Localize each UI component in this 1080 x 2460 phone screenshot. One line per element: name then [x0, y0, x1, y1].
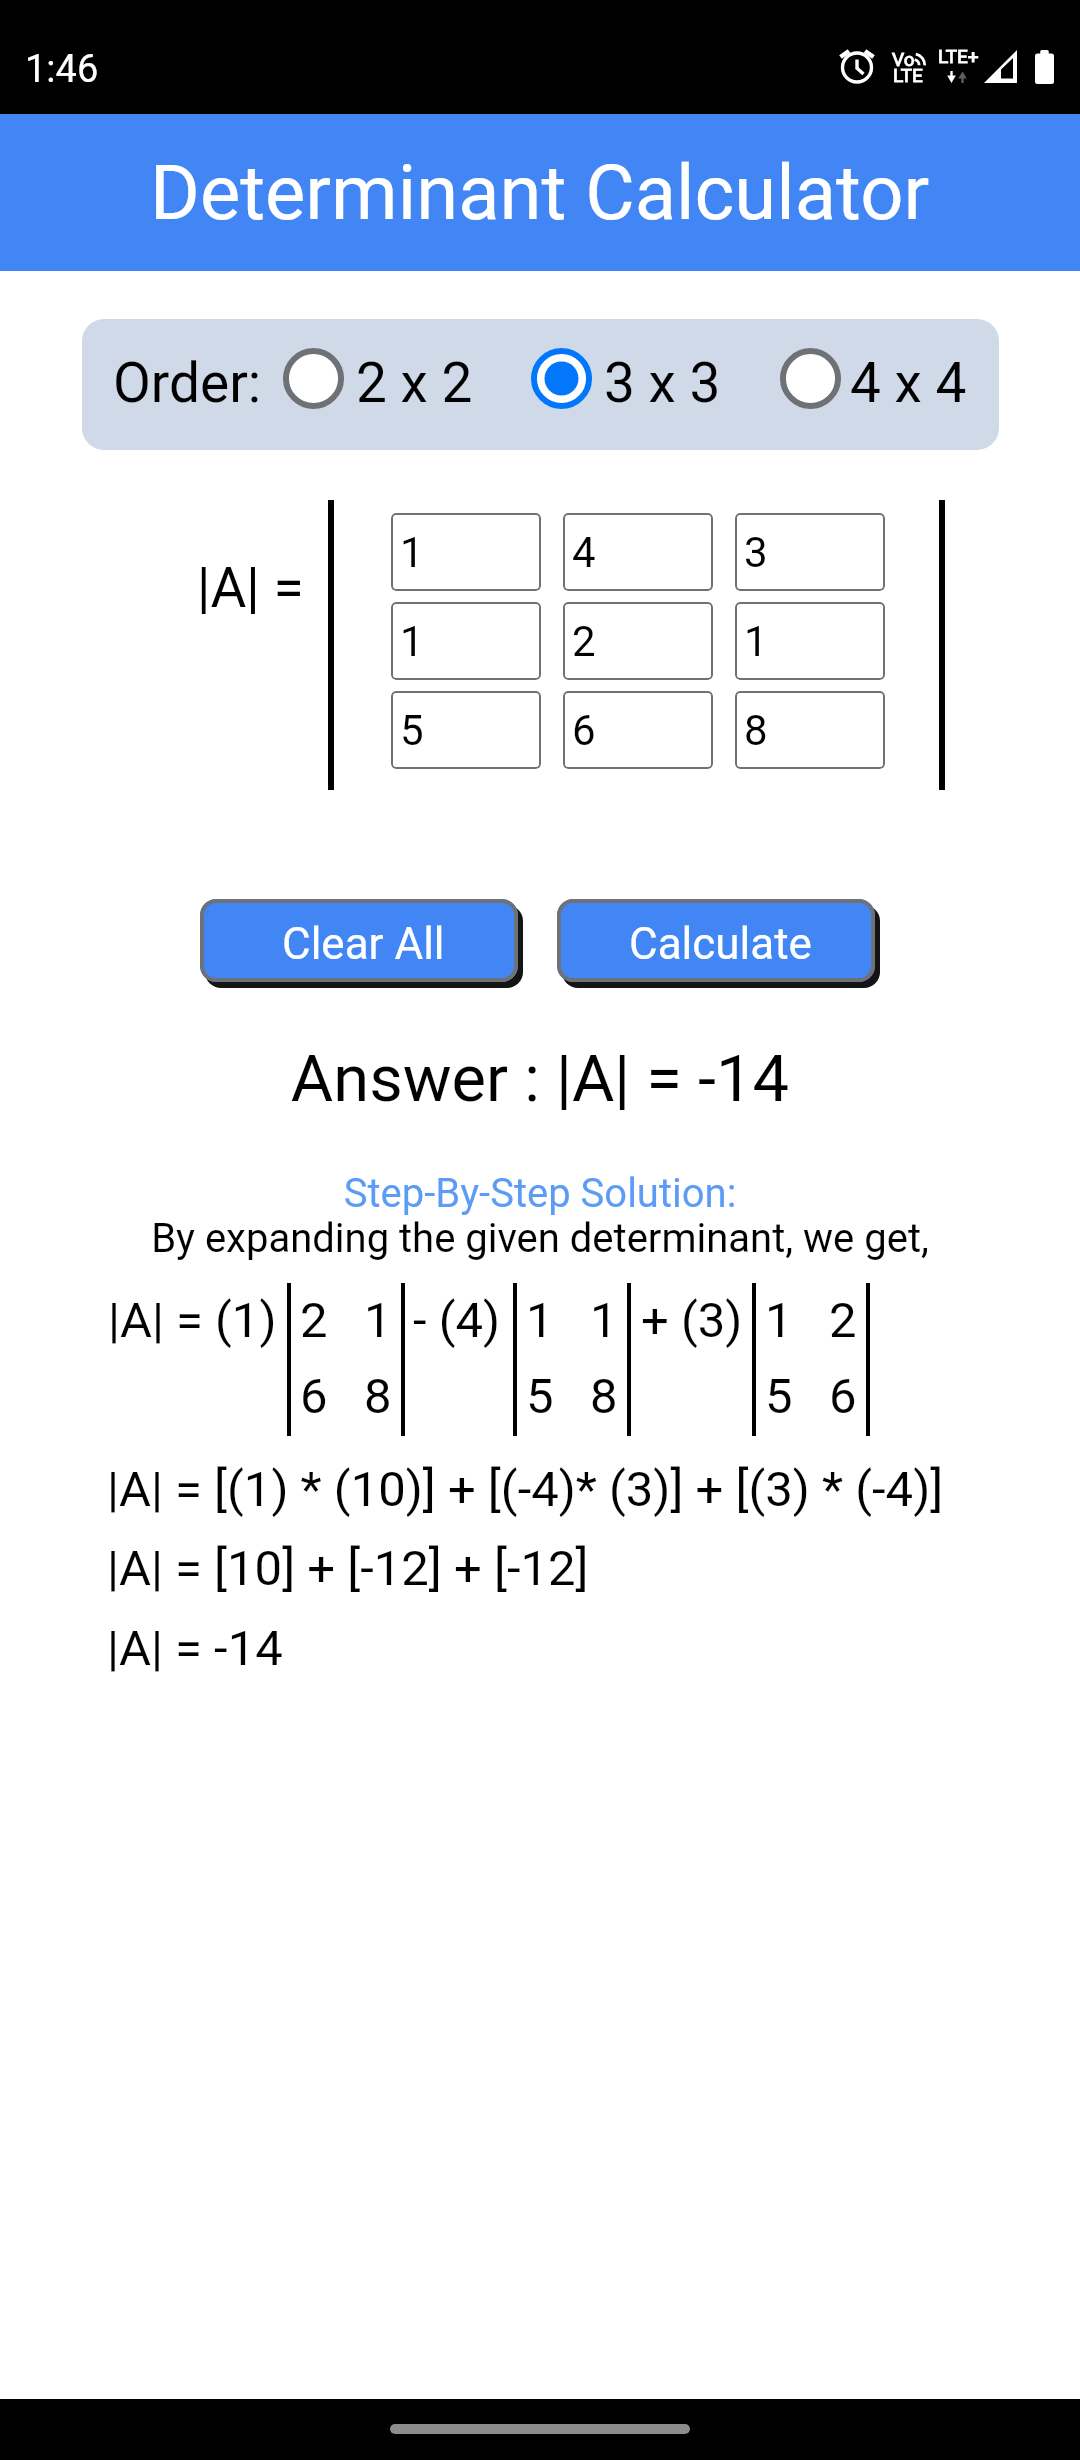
staticText: 1 [400, 617, 424, 666]
staticText: + (3) [641, 1292, 743, 1349]
button[interactable]: 1 [391, 602, 541, 680]
staticText: Answer : |A| = -14 [0, 1041, 1080, 1117]
button[interactable]: 2 [563, 602, 713, 680]
staticText: 1:46 [25, 47, 99, 92]
staticText: 2 [300, 1292, 328, 1349]
staticText: 5 [400, 706, 424, 755]
staticText: LTE+ [938, 45, 979, 67]
button[interactable]: 4 [563, 513, 713, 591]
button[interactable]: Home [390, 2424, 690, 2434]
button[interactable]: 1 [735, 602, 885, 680]
button[interactable]: Determinant Calculator [0, 114, 1080, 271]
button[interactable]: Calculate [557, 899, 875, 982]
staticText: LTE [893, 64, 923, 86]
staticText: 6 [829, 1368, 857, 1425]
staticText: 5 [526, 1368, 554, 1425]
button[interactable]: 5 [391, 691, 541, 769]
staticText: 1 [590, 1292, 618, 1349]
staticText: 4 [572, 528, 596, 577]
staticText: 8 [590, 1368, 618, 1425]
staticText: 8 [364, 1368, 392, 1425]
staticText: |A| = (1) [108, 1292, 277, 1349]
staticText: Step-By-Step Solution: [0, 1170, 1080, 1217]
staticText: 2 x 2 [356, 351, 473, 415]
staticText: 3 x 3 [604, 351, 721, 415]
staticText: 5 [765, 1368, 793, 1425]
staticText: |A| = [10] + [-12] + [-12] [107, 1540, 589, 1597]
staticText: 8 [744, 706, 768, 755]
button[interactable]: 6 [563, 691, 713, 769]
button[interactable]: Clear All [200, 899, 518, 982]
staticText: Order: [113, 351, 262, 415]
staticText: 1 [744, 617, 768, 666]
staticText: 3 [744, 528, 768, 577]
staticText: Vo [892, 48, 915, 70]
button[interactable]: 1 [391, 513, 541, 591]
button[interactable]: 3 [735, 513, 885, 591]
staticText: 1 [364, 1292, 392, 1349]
staticText: 4 x 4 [850, 351, 967, 415]
staticText: 1 [765, 1292, 793, 1349]
staticText: Clear All [282, 918, 445, 970]
staticText: 6 [300, 1368, 328, 1425]
button[interactable]: 3 x 3 [530, 319, 736, 450]
button[interactable]: 4 x 4 [779, 319, 982, 450]
staticText: 2 [829, 1292, 857, 1349]
staticText: 2 [572, 617, 596, 666]
staticText: |A| = -14 [107, 1620, 283, 1677]
staticText: 1 [526, 1292, 554, 1349]
staticText: By expanding the given determinant, we g… [0, 1215, 1080, 1262]
staticText: |A| = [197, 556, 304, 620]
button[interactable]: 2 x 2 [282, 319, 488, 450]
staticText: 1 [400, 528, 424, 577]
staticText: Calculate [629, 918, 812, 970]
staticText: Determinant Calculator [150, 148, 930, 237]
staticText: - (4) [413, 1292, 501, 1349]
staticText: 6 [572, 706, 596, 755]
staticText: |A| = [(1) * (10)] + [(-4)* (3)] + [(3) … [107, 1461, 944, 1518]
button[interactable]: 8 [735, 691, 885, 769]
